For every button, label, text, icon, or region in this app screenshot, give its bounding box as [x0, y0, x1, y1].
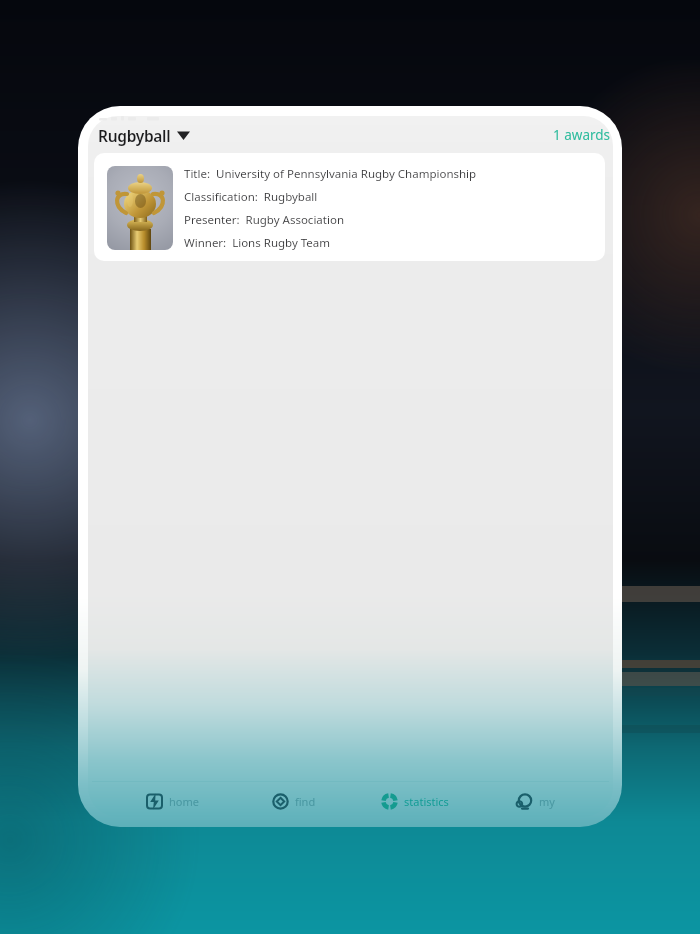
button[interactable]: home [112, 785, 233, 817]
staticText: home [169, 794, 199, 809]
staticText: Title: University of Pennsylvania Rugby … [184, 166, 477, 182]
button[interactable]: find [233, 785, 354, 817]
button[interactable]: statistics [354, 785, 475, 817]
staticText: Presenter: Rugby Association [184, 212, 344, 228]
staticText: Winner: Lions Rugby Team [184, 235, 331, 251]
staticText: 1 awards [553, 126, 611, 144]
button[interactable]: Title: University of Pennsylvania Rugby … [94, 153, 605, 261]
staticText: my [539, 794, 555, 809]
staticText: Classification: Rugbyball [184, 189, 318, 205]
staticText: Rugbyball [98, 125, 171, 146]
staticText: statistics [404, 794, 449, 809]
staticText: find [295, 794, 316, 809]
button[interactable]: 1 awards [461, 124, 611, 146]
button[interactable]: my [475, 785, 596, 817]
button[interactable]: Rugbyball [96, 122, 192, 148]
